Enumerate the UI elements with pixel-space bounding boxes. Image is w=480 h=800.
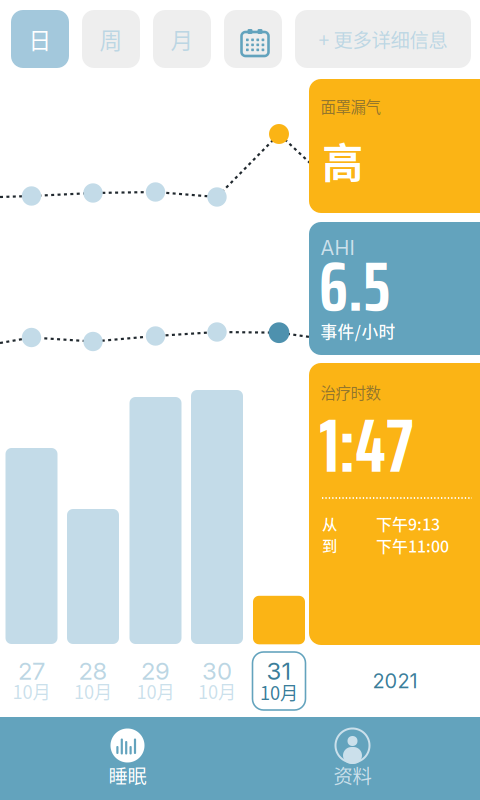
staticText: 下午9:13 bbox=[376, 512, 440, 535]
staticText: 周 bbox=[99, 23, 122, 55]
staticText: 10月 bbox=[198, 678, 236, 704]
button[interactable]: + 更多详细信息 bbox=[295, 10, 471, 68]
staticText: 资料 bbox=[333, 761, 371, 789]
staticText: 10月 bbox=[74, 678, 112, 704]
button[interactable]: Calendar bbox=[224, 10, 282, 68]
button[interactable]: 面罩漏气 bbox=[309, 79, 480, 213]
staticText: 治疗时数 bbox=[320, 381, 380, 403]
button[interactable]: AHI bbox=[309, 222, 480, 355]
staticText: 下午11:00 bbox=[376, 534, 449, 557]
staticText: 月 bbox=[170, 23, 193, 55]
button[interactable]: 治疗时数 bbox=[309, 363, 480, 645]
button[interactable]: 31 bbox=[252, 652, 305, 710]
staticText: 高 bbox=[322, 130, 363, 190]
staticText: 1:47 bbox=[319, 387, 413, 504]
button[interactable]: 周 bbox=[82, 10, 140, 68]
staticText: 10月 bbox=[12, 678, 50, 704]
staticText: 10月 bbox=[136, 678, 174, 704]
staticText: 29 bbox=[141, 656, 170, 685]
staticText: 睡眠 bbox=[108, 761, 146, 789]
staticText: 从 bbox=[322, 512, 337, 534]
staticText: 10月 bbox=[260, 679, 298, 705]
staticText: 28 bbox=[78, 656, 107, 685]
staticText: 27 bbox=[18, 656, 45, 685]
button[interactable]: 月 bbox=[153, 10, 211, 68]
button[interactable]: 日 bbox=[11, 10, 69, 68]
staticText: 日 bbox=[28, 23, 51, 55]
staticText: 面罩漏气 bbox=[320, 95, 380, 117]
staticText: 31 bbox=[266, 656, 291, 685]
staticText: AHI bbox=[320, 235, 354, 260]
staticText: 事件/小时 bbox=[320, 319, 395, 343]
staticText: 到 bbox=[322, 534, 337, 556]
staticText: 2021 bbox=[372, 669, 417, 693]
staticText: 6.5 bbox=[319, 232, 390, 341]
button[interactable]: 睡眠 bbox=[57, 717, 197, 800]
staticText: + 更多详细信息 bbox=[318, 25, 447, 53]
staticText: 30 bbox=[202, 656, 232, 685]
button[interactable]: 资料 bbox=[282, 717, 422, 800]
